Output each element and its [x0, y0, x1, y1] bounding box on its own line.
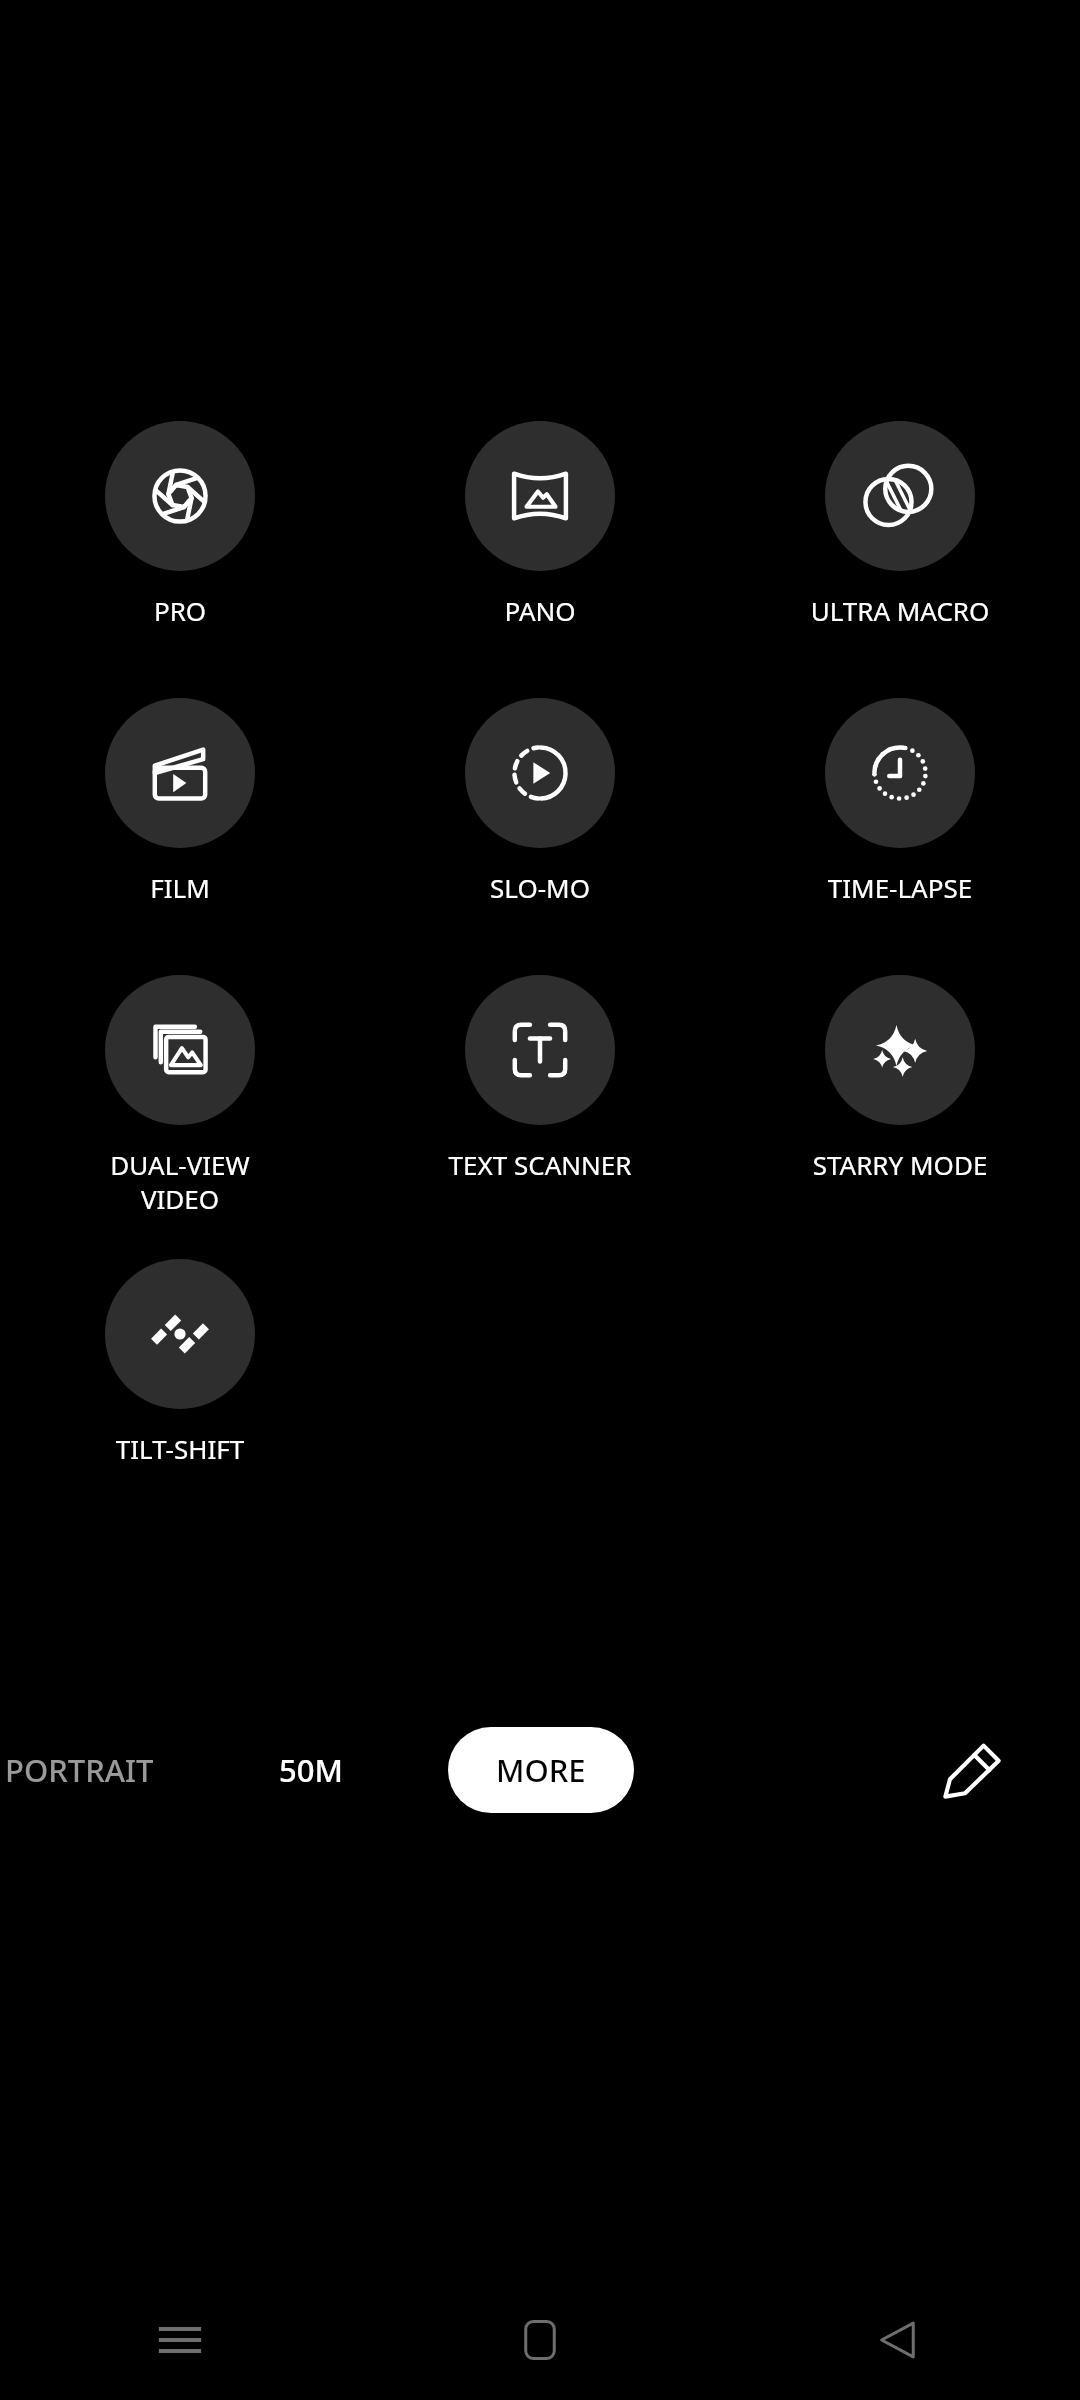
staticText: PANO — [390, 593, 690, 628]
button[interactable]: DUAL-VIEW VIDEO — [30, 971, 330, 1216]
button[interactable]: Home — [360, 2280, 720, 2400]
staticText: STARRY MODE — [750, 1147, 1050, 1182]
staticText: FILM — [30, 870, 330, 905]
staticText: 50M — [279, 1749, 343, 1791]
button[interactable]: MORE — [448, 1727, 634, 1813]
button[interactable]: Edit modes — [922, 1720, 1022, 1820]
button[interactable]: TIME-LAPSE — [750, 694, 1050, 905]
staticText: TILT-SHIFT — [30, 1431, 330, 1466]
button[interactable]: TILT-SHIFT — [30, 1255, 330, 1466]
staticText: ULTRA MACRO — [750, 593, 1050, 628]
button[interactable]: FILM — [30, 694, 330, 905]
staticText: SLO-MO — [390, 870, 690, 905]
staticText: TIME-LAPSE — [750, 870, 1050, 905]
button[interactable]: Recent apps — [0, 2280, 360, 2400]
button[interactable]: PANO — [390, 417, 690, 628]
button[interactable]: PORTRAIT — [0, 1737, 168, 1803]
button[interactable]: SLO-MO — [390, 694, 690, 905]
button[interactable]: ULTRA MACRO — [750, 417, 1050, 628]
staticText: PORTRAIT — [5, 1749, 154, 1791]
staticText: PRO — [30, 593, 330, 628]
button[interactable]: PRO — [30, 417, 330, 628]
staticText: DUAL-VIEW VIDEO — [30, 1147, 330, 1216]
staticText: TEXT SCANNER — [390, 1147, 690, 1182]
button[interactable]: TEXT SCANNER — [390, 971, 690, 1182]
button[interactable]: 50M — [265, 1737, 357, 1803]
button[interactable]: Back — [720, 2280, 1080, 2400]
button[interactable]: STARRY MODE — [750, 971, 1050, 1182]
staticText: MORE — [496, 1749, 586, 1791]
